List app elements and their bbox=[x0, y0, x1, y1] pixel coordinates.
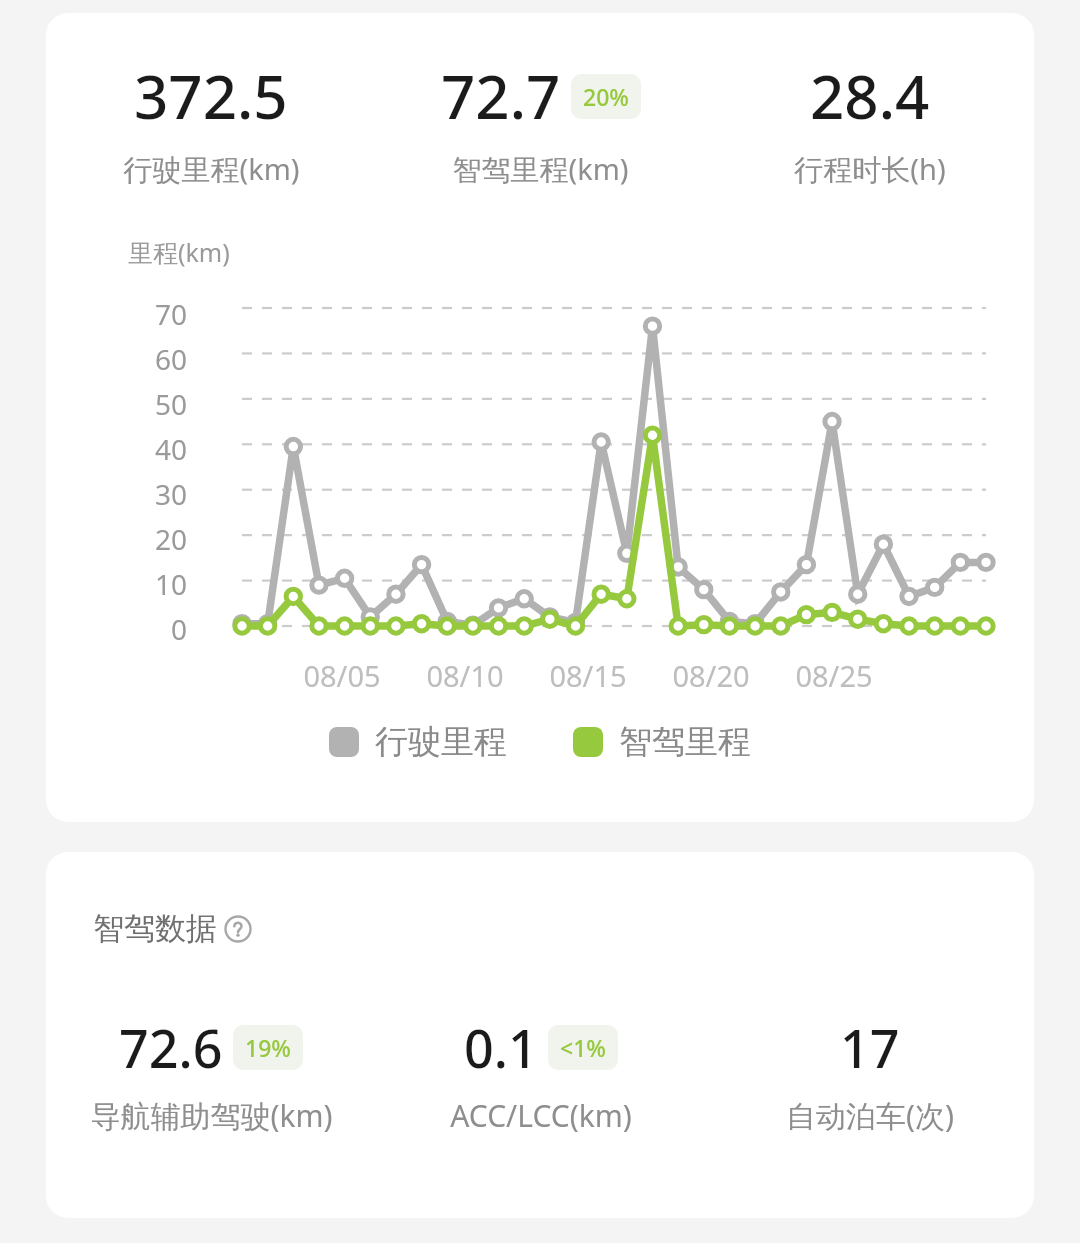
staticText: 20 bbox=[155, 520, 188, 558]
staticText: 08/15 bbox=[533, 656, 643, 695]
button[interactable]: 智驾数据 bbox=[91, 905, 254, 952]
staticText: 20% bbox=[583, 81, 629, 112]
staticText: ACC/LCC(km) bbox=[450, 1095, 632, 1136]
staticText: 0.1 bbox=[464, 1012, 538, 1083]
staticText: 08/10 bbox=[410, 656, 520, 695]
staticText: 72.7 bbox=[441, 55, 561, 137]
staticText: 70 bbox=[155, 295, 188, 333]
staticText: 50 bbox=[155, 385, 188, 423]
staticText: 28.4 bbox=[810, 55, 930, 137]
staticText: 08/05 bbox=[287, 656, 397, 695]
button[interactable]: 372.5 bbox=[46, 55, 376, 189]
button[interactable]: 行驶里程 bbox=[325, 717, 511, 767]
staticText: 0 bbox=[171, 610, 188, 648]
staticText: 行驶里程(km) bbox=[123, 149, 300, 189]
staticText: 自动泊车(次) bbox=[786, 1095, 954, 1136]
staticText: 行程时长(h) bbox=[794, 149, 946, 189]
button[interactable]: 72.7 bbox=[376, 55, 705, 189]
staticText: 智驾里程 bbox=[619, 721, 751, 763]
staticText: 40 bbox=[155, 430, 188, 468]
staticText: 72.6 bbox=[119, 1012, 223, 1083]
staticText: 17 bbox=[840, 1012, 900, 1083]
staticText: 10 bbox=[155, 565, 188, 603]
button[interactable]: 72.6 bbox=[46, 1012, 376, 1136]
button[interactable]: 智驾里程 bbox=[569, 717, 755, 767]
button[interactable]: 0.1 bbox=[376, 1012, 705, 1136]
staticText: 里程(km) bbox=[128, 235, 230, 269]
staticText: 08/25 bbox=[779, 656, 889, 695]
staticText: 19% bbox=[245, 1032, 291, 1063]
staticText: 智驾里程(km) bbox=[452, 149, 629, 189]
other: Help bbox=[224, 915, 252, 943]
staticText: 行驶里程 bbox=[375, 721, 507, 763]
staticText: 智驾数据 bbox=[93, 909, 217, 948]
staticText: 372.5 bbox=[134, 55, 288, 137]
staticText: 30 bbox=[155, 475, 188, 513]
staticText: <1% bbox=[560, 1032, 606, 1063]
staticText: 60 bbox=[155, 340, 188, 378]
button[interactable]: 28.4 bbox=[705, 55, 1034, 189]
staticText: 08/20 bbox=[656, 656, 766, 695]
staticText: 导航辅助驾驶(km) bbox=[90, 1095, 333, 1136]
button[interactable]: 17 bbox=[705, 1012, 1034, 1136]
